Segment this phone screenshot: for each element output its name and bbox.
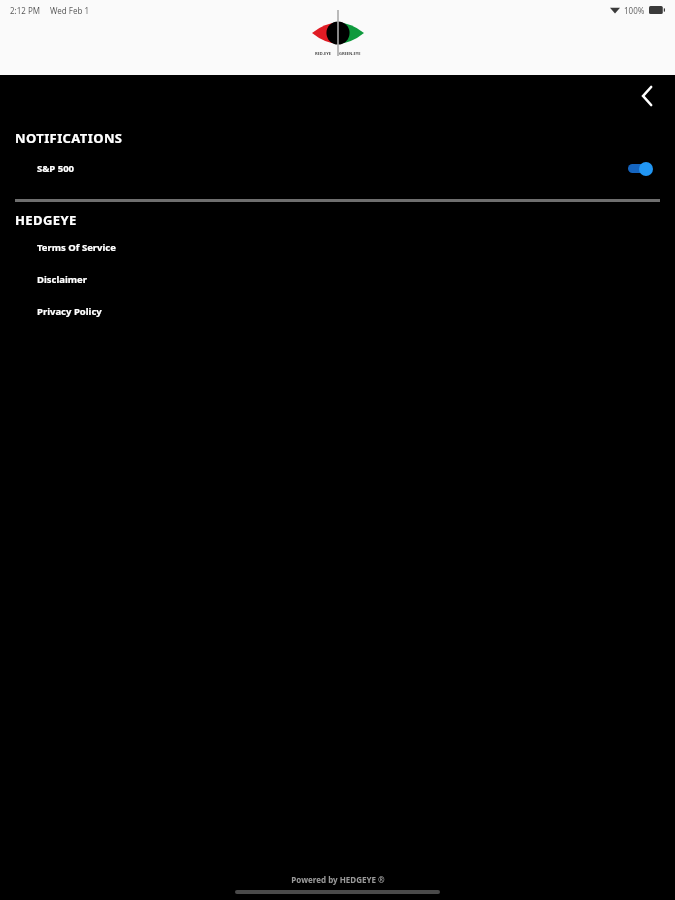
staticText: 100% [624,5,645,16]
staticText: HEDGEYE [15,211,77,229]
staticText: Powered by HEDGEYE ® [291,874,385,885]
staticText: 2:12 PM [10,5,41,16]
button[interactable]: Back [631,80,663,112]
staticText: Wed Feb 1 [50,5,90,16]
staticText: GREEN-EYE [339,51,361,56]
button[interactable]: S&P 500 [0,155,675,181]
staticText: Privacy Policy [37,305,102,318]
button[interactable]: Disclaimer [0,272,675,287]
staticText: RED-EYE [315,51,332,56]
staticText: S&P 500 [37,162,75,175]
button[interactable]: S&P 500 notifications toggle [627,161,653,176]
button[interactable]: Privacy Policy [0,304,675,319]
staticText: Disclaimer [37,273,88,286]
staticText: Terms Of Service [37,241,116,254]
button[interactable]: Terms Of Service [0,240,675,255]
staticText: NOTIFICATIONS [15,129,123,147]
